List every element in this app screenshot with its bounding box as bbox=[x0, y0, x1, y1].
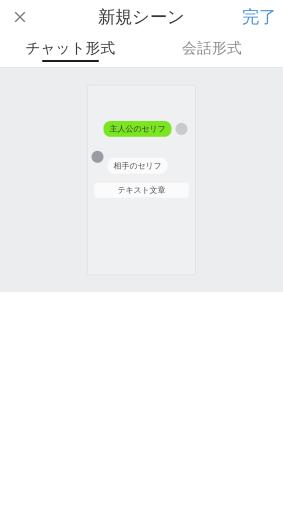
staticText: 完了 bbox=[242, 6, 276, 28]
button[interactable]: 完了 bbox=[235, 0, 283, 34]
staticText: 主人公のセリフ bbox=[109, 124, 165, 134]
staticText: チャット形式 bbox=[25, 39, 115, 57]
staticText: テキスト文章 bbox=[117, 185, 165, 195]
staticText: 相手のセリフ bbox=[113, 161, 161, 171]
staticText: 会話形式 bbox=[182, 39, 242, 57]
button[interactable]: 閉じる bbox=[0, 0, 40, 34]
staticText: 新規シーン bbox=[98, 6, 185, 28]
button[interactable]: 会話形式 bbox=[141, 34, 283, 67]
button[interactable]: チャット形式 bbox=[0, 34, 141, 67]
